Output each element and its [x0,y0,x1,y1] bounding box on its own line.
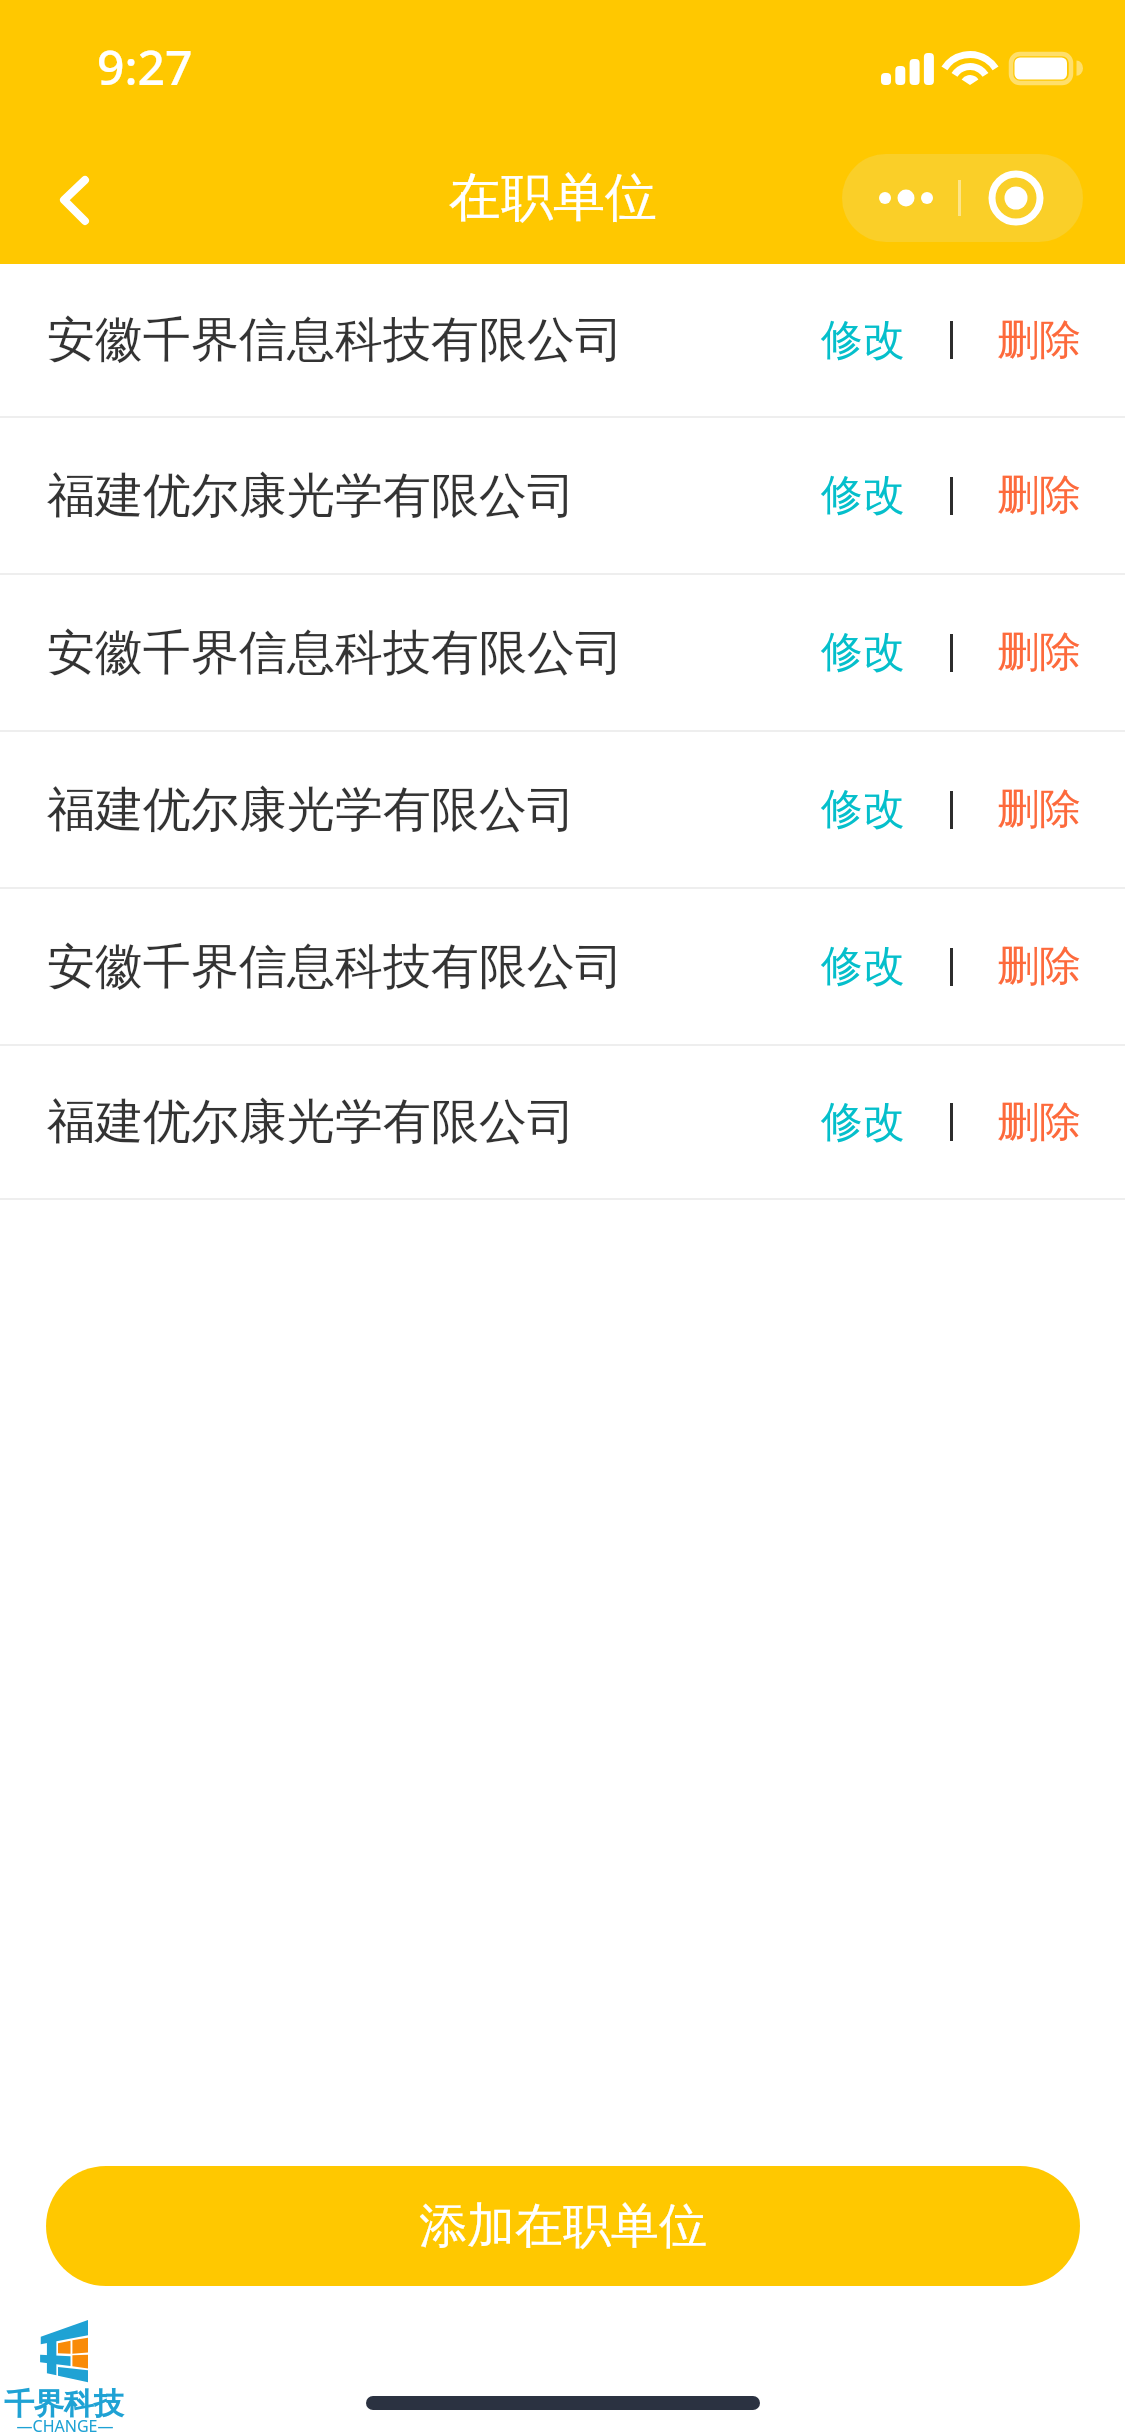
button[interactable]: 福建优尔康光学有限公司 [0,1046,1125,1198]
staticText: 福建优尔康光学有限公司 [47,1092,575,1152]
button[interactable]: 修改 [795,575,931,730]
staticText: 安徽千界信息科技有限公司 [47,937,623,997]
button[interactable]: 删除 [971,1046,1107,1198]
button[interactable]: 安徽千界信息科技有限公司 [0,264,1125,416]
button[interactable]: 修改 [795,264,931,416]
staticText: 福建优尔康光学有限公司 [47,780,575,840]
staticText: 安徽千界信息科技有限公司 [47,310,623,370]
staticText: 删除 [997,783,1081,836]
button[interactable]: 福建优尔康光学有限公司 [0,732,1125,887]
staticText: —CHANGE— [4,2415,126,2436]
button[interactable]: 删除 [971,732,1107,887]
button[interactable]: 删除 [971,418,1107,573]
button[interactable]: More options [842,154,959,242]
button[interactable]: 福建优尔康光学有限公司 [0,418,1125,573]
staticText: 福建优尔康光学有限公司 [47,466,575,526]
button[interactable]: 修改 [795,418,931,573]
button[interactable]: Close mini program [966,154,1083,242]
staticText: 修改 [821,1096,905,1149]
staticText: 修改 [821,783,905,836]
staticText: 修改 [821,626,905,679]
button[interactable]: 修改 [795,1046,931,1198]
button[interactable]: 修改 [795,732,931,887]
staticText: 删除 [997,314,1081,367]
staticText: 修改 [821,940,905,993]
staticText: 9:27 [97,34,193,99]
button[interactable]: 删除 [971,889,1107,1044]
staticText: 在职单位 [449,165,657,231]
staticText: 删除 [997,940,1081,993]
staticText: 安徽千界信息科技有限公司 [47,623,623,683]
staticText: 添加在职单位 [419,2196,707,2256]
button[interactable]: 安徽千界信息科技有限公司 [0,889,1125,1044]
staticText: 删除 [997,626,1081,679]
button[interactable]: 添加在职单位 [46,2166,1080,2286]
button[interactable]: 删除 [971,575,1107,730]
staticText: 删除 [997,1096,1081,1149]
button[interactable]: 修改 [795,889,931,1044]
button[interactable]: Back [16,155,106,245]
button[interactable]: 删除 [971,264,1107,416]
staticText: 修改 [821,314,905,367]
staticText: 修改 [821,469,905,522]
staticText: 千界科技 [4,2385,124,2423]
button[interactable]: 安徽千界信息科技有限公司 [0,575,1125,730]
staticText: 删除 [997,469,1081,522]
